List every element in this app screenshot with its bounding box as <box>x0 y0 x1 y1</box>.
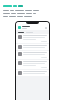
button[interactable] <box>16 70 49 76</box>
button[interactable] <box>16 34 49 43</box>
button[interactable] <box>16 60 49 69</box>
button[interactable]: App logo <box>16 25 49 30</box>
button[interactable]: All <box>18 32 24 33</box>
button[interactable] <box>16 51 49 59</box>
other: App logo <box>18 26 21 29</box>
button[interactable] <box>16 44 49 50</box>
